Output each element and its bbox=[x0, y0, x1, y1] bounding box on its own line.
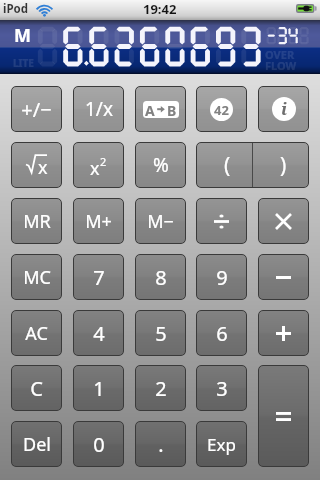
button[interactable]: 4 bbox=[73, 310, 124, 356]
staticText: . bbox=[158, 431, 164, 458]
button[interactable]: M+ bbox=[73, 198, 124, 244]
button[interactable]: A to B bbox=[135, 86, 186, 132]
button[interactable]: 2 bbox=[135, 365, 186, 411]
button[interactable]: minus bbox=[258, 254, 309, 300]
staticText: 1 bbox=[93, 375, 105, 402]
button[interactable]: 3 bbox=[196, 365, 247, 411]
button[interactable]: x squared bbox=[73, 142, 124, 188]
button[interactable]: MR bbox=[11, 198, 62, 244]
button[interactable]: 9 bbox=[196, 254, 247, 300]
button[interactable]: 0 bbox=[73, 421, 124, 467]
staticText: M− bbox=[147, 209, 174, 234]
staticText: C bbox=[30, 375, 43, 402]
staticText: 1/x bbox=[85, 96, 113, 122]
staticText: 5 bbox=[155, 320, 167, 347]
button[interactable]: % bbox=[135, 142, 186, 188]
button[interactable]: 42 bbox=[196, 86, 247, 132]
button[interactable]: Del bbox=[11, 421, 62, 467]
staticText: AC bbox=[25, 321, 48, 346]
staticText: 2 bbox=[100, 154, 107, 169]
button[interactable]: open paren bbox=[196, 142, 258, 188]
staticText: M+ bbox=[85, 209, 112, 234]
button[interactable]: M− bbox=[135, 198, 186, 244]
staticText: ) bbox=[280, 151, 287, 180]
staticText: Exp bbox=[207, 433, 236, 456]
button[interactable]: multiply bbox=[258, 198, 309, 244]
staticText: 8 bbox=[155, 264, 167, 291]
button[interactable]: equals bbox=[258, 365, 309, 467]
staticText: B bbox=[167, 101, 177, 118]
button[interactable]: . bbox=[135, 421, 186, 467]
staticText: i bbox=[281, 97, 288, 120]
staticText: MR bbox=[23, 209, 51, 234]
staticText: M bbox=[14, 23, 31, 48]
staticText: MC bbox=[23, 265, 51, 290]
staticText: LITE bbox=[13, 56, 34, 70]
staticText: 2 bbox=[155, 375, 167, 402]
staticText: Del bbox=[23, 432, 51, 457]
button[interactable]: MC bbox=[11, 254, 62, 300]
button[interactable]: 8 bbox=[135, 254, 186, 300]
button[interactable]: +/− bbox=[11, 86, 62, 132]
staticText: 9 bbox=[216, 264, 228, 291]
button[interactable]: close paren bbox=[258, 142, 309, 188]
staticText: OVER FLOW bbox=[265, 47, 297, 73]
staticText: 42 bbox=[214, 101, 229, 119]
button[interactable]: AC bbox=[11, 310, 62, 356]
staticText: iPod bbox=[3, 1, 29, 17]
staticText: 3 bbox=[216, 375, 228, 402]
staticText: % bbox=[153, 152, 169, 178]
button[interactable]: 1/x bbox=[73, 86, 124, 132]
staticText: +/− bbox=[21, 96, 52, 123]
button[interactable]: divide bbox=[196, 198, 247, 244]
staticText: 6 bbox=[216, 320, 228, 347]
button[interactable]: 5 bbox=[135, 310, 186, 356]
button[interactable]: C bbox=[11, 365, 62, 411]
button[interactable]: square root bbox=[11, 142, 62, 188]
staticText: x bbox=[90, 156, 100, 181]
button[interactable]: plus bbox=[258, 310, 309, 356]
staticText: 0 bbox=[93, 431, 105, 458]
button[interactable]: 1 bbox=[73, 365, 124, 411]
button[interactable]: Exp bbox=[196, 421, 247, 467]
staticText: ( bbox=[224, 151, 231, 180]
button[interactable]: 7 bbox=[73, 254, 124, 300]
staticText: 4 bbox=[93, 320, 105, 347]
staticText: A bbox=[145, 101, 155, 118]
staticText: 7 bbox=[93, 264, 105, 291]
button[interactable]: Info bbox=[258, 86, 309, 132]
staticText: x bbox=[38, 155, 48, 180]
staticText: 19:42 bbox=[143, 0, 177, 18]
button[interactable]: 6 bbox=[196, 310, 247, 356]
